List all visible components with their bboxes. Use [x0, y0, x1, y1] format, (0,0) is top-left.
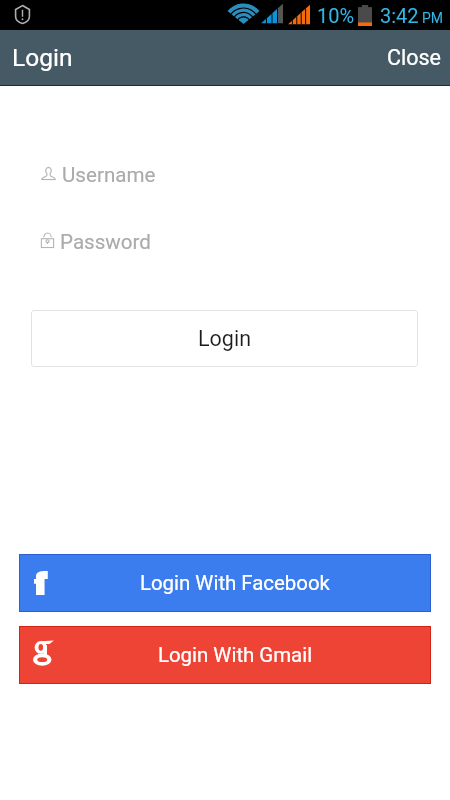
staticText: 3:42 — [380, 4, 419, 27]
button[interactable]: Username — [0, 162, 450, 188]
staticText: Close — [387, 45, 441, 70]
staticText: Password — [60, 230, 151, 254]
button[interactable]: Password — [0, 229, 450, 255]
staticText: Login — [198, 326, 252, 351]
staticText: PM — [422, 10, 444, 26]
staticText: Login With Facebook — [140, 571, 330, 595]
other: Battery 10 percent — [358, 5, 372, 26]
staticText: Login With Gmail — [158, 643, 313, 667]
staticText: Username — [62, 163, 156, 187]
button[interactable]: Login With Facebook — [19, 554, 431, 612]
button[interactable]: Close — [378, 35, 450, 80]
staticText: Login — [12, 43, 73, 72]
button[interactable]: Login — [31, 310, 418, 367]
button[interactable]: Login With Gmail — [19, 626, 431, 684]
other: Wi-Fi — [231, 4, 256, 24]
staticText: 10% — [317, 4, 355, 27]
other: Security notification — [15, 5, 30, 24]
